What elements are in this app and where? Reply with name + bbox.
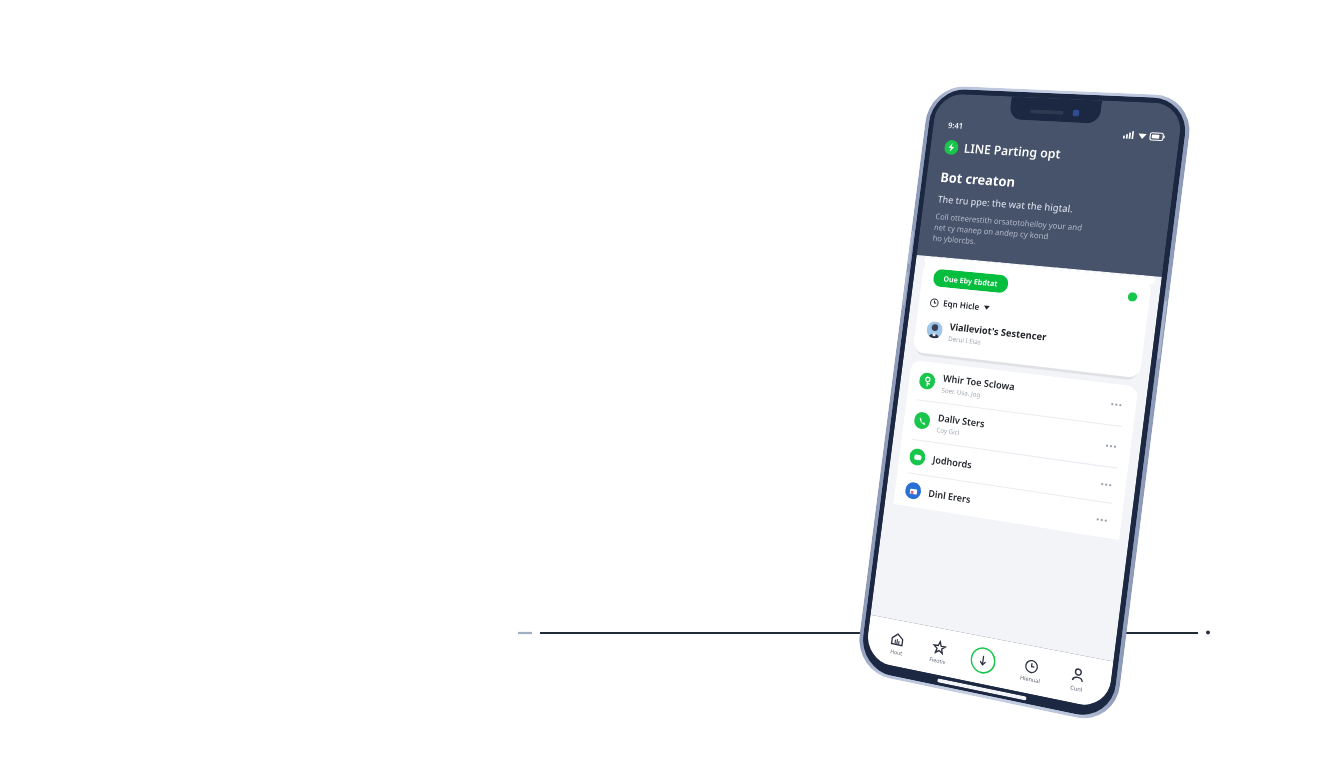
button[interactable]: Vialleviot's Sestencer [914, 316, 1144, 365]
staticText: Cunl [1070, 683, 1083, 693]
button[interactable]: Jodhords [897, 438, 1128, 506]
staticText: Oue Eby Ebdtat [943, 273, 998, 289]
button[interactable]: More options [1102, 440, 1120, 452]
button[interactable]: Dallv Sters [901, 399, 1133, 470]
staticText: Bot creaton [939, 168, 1016, 191]
staticText: Hienual [1020, 673, 1040, 684]
button[interactable]: Cunl [1064, 662, 1091, 697]
button[interactable]: Hout [885, 627, 909, 660]
staticText: Derui I Eias [948, 334, 982, 347]
staticText: Coll otteerestith orsatotoheiloy your an… [932, 210, 1084, 255]
button[interactable]: Eqn Hicle [918, 295, 1147, 330]
staticText: Soer. Usa. Jog [941, 385, 981, 399]
staticText: The tru ppe: the wat the higtal. [937, 193, 1074, 215]
staticText: Coy Gicl [936, 425, 961, 437]
button[interactable]: More options [1097, 479, 1115, 491]
button[interactable]: Whir Toe Sclowa [907, 360, 1139, 428]
staticText: Eqn Hicle [942, 297, 981, 313]
staticText: 9:41 [948, 119, 964, 131]
button[interactable]: More options [1093, 514, 1111, 526]
staticText: Jodhords [932, 453, 973, 472]
button[interactable]: Create [969, 645, 997, 676]
staticText: LINE Parting opt [963, 140, 1062, 162]
staticText: Dinl Erers [928, 487, 972, 506]
button[interactable]: LINE Parting opt [943, 139, 1162, 169]
button[interactable]: Hienual [1015, 653, 1047, 688]
button[interactable]: Fieotiv [925, 635, 952, 669]
staticText: Dallv Sters [937, 411, 986, 430]
button[interactable]: More options [1107, 399, 1125, 410]
button[interactable]: Dinl Erers [893, 472, 1124, 540]
staticText: Vialleviot's Sestencer [949, 320, 1048, 344]
staticText: Fieotiv [929, 655, 946, 665]
button[interactable]: Oue Eby Ebdtat [932, 269, 1009, 294]
staticText: Hout [890, 647, 903, 656]
staticText: Whir Toe Sclowa [942, 372, 1016, 393]
